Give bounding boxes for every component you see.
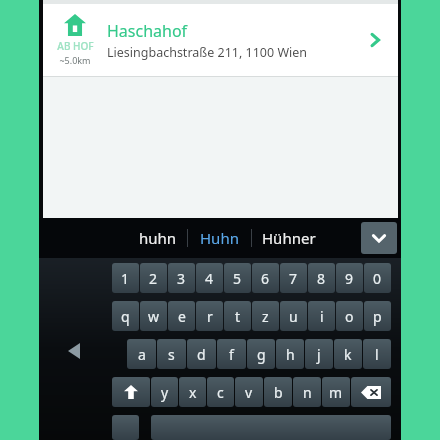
- button[interactable]: Hide keyboard: [61, 336, 91, 366]
- button[interactable]: More suggestions: [361, 222, 397, 254]
- staticText: k: [344, 345, 352, 364]
- staticText: AB HOF: [57, 39, 94, 53]
- button[interactable]: t: [224, 301, 251, 331]
- staticText: 1: [121, 269, 130, 288]
- button[interactable]: w: [140, 301, 167, 331]
- button[interactable]: q: [112, 301, 139, 331]
- staticText: n: [303, 383, 312, 402]
- staticText: h: [286, 345, 295, 364]
- staticText: y: [161, 383, 169, 402]
- button[interactable]: 5: [224, 263, 251, 293]
- button[interactable]: h: [276, 339, 304, 369]
- button[interactable]: e: [168, 301, 195, 331]
- button[interactable]: 4: [196, 263, 223, 293]
- button[interactable]: AB HOF: [43, 4, 398, 76]
- button[interactable]: 8: [308, 263, 335, 293]
- staticText: a: [138, 345, 146, 364]
- staticText: d: [197, 345, 206, 364]
- button[interactable]: p: [364, 301, 391, 331]
- staticText: 6: [261, 269, 270, 288]
- button[interactable]: Shift: [112, 377, 150, 407]
- button[interactable]: o: [336, 301, 363, 331]
- staticText: 3: [177, 269, 186, 288]
- staticText: 9: [345, 269, 354, 288]
- staticText: 0: [373, 269, 382, 288]
- staticText: m: [329, 383, 343, 402]
- staticText: f: [229, 345, 234, 364]
- button[interactable]: r: [196, 301, 223, 331]
- button[interactable]: x: [179, 377, 206, 407]
- button[interactable]: c: [207, 377, 234, 407]
- staticText: 5: [233, 269, 242, 288]
- staticText: Hühner: [262, 228, 316, 248]
- staticText: 8: [317, 269, 326, 288]
- button[interactable]: 9: [336, 263, 363, 293]
- button[interactable]: [151, 415, 391, 440]
- button[interactable]: 7: [280, 263, 307, 293]
- staticText: i: [320, 307, 324, 326]
- button[interactable]: [112, 415, 139, 440]
- button[interactable]: s: [157, 339, 186, 369]
- staticText: 4: [205, 269, 214, 288]
- staticText: ~5.0km: [59, 54, 91, 66]
- button[interactable]: 2: [140, 263, 167, 293]
- button[interactable]: Huhn: [188, 228, 251, 248]
- button[interactable]: f: [217, 339, 246, 369]
- button[interactable]: y: [151, 377, 178, 407]
- staticText: Huhn: [200, 228, 239, 248]
- staticText: z: [262, 307, 269, 326]
- staticText: 2: [149, 269, 158, 288]
- button[interactable]: 0: [364, 263, 391, 293]
- staticText: huhn: [139, 228, 177, 248]
- staticText: v: [245, 383, 253, 402]
- button[interactable]: i: [308, 301, 335, 331]
- staticText: s: [168, 345, 175, 364]
- staticText: e: [178, 307, 186, 326]
- staticText: b: [274, 383, 283, 402]
- staticText: x: [189, 383, 197, 402]
- button[interactable]: 3: [168, 263, 195, 293]
- button[interactable]: z: [252, 301, 279, 331]
- staticText: t: [235, 307, 241, 326]
- button[interactable]: Backspace: [351, 377, 391, 407]
- button[interactable]: n: [293, 377, 321, 407]
- staticText: o: [345, 307, 354, 326]
- button[interactable]: d: [187, 339, 216, 369]
- button[interactable]: m: [322, 377, 350, 407]
- button[interactable]: v: [235, 377, 263, 407]
- button[interactable]: g: [247, 339, 275, 369]
- staticText: j: [317, 345, 321, 364]
- button[interactable]: a: [127, 339, 156, 369]
- button[interactable]: k: [334, 339, 362, 369]
- staticText: w: [148, 307, 160, 326]
- staticText: Haschahof: [107, 20, 188, 42]
- button[interactable]: 1: [112, 263, 139, 293]
- button[interactable]: Open details: [352, 4, 398, 76]
- staticText: l: [375, 345, 379, 364]
- staticText: 7: [289, 269, 298, 288]
- button[interactable]: j: [305, 339, 333, 369]
- staticText: c: [217, 383, 224, 402]
- button[interactable]: b: [264, 377, 292, 407]
- button[interactable]: Hühner: [252, 228, 326, 248]
- staticText: p: [373, 307, 382, 326]
- button[interactable]: u: [280, 301, 307, 331]
- staticText: Liesingbachstraße 211, 1100 Wien: [107, 44, 308, 61]
- staticText: g: [257, 345, 266, 364]
- button[interactable]: l: [363, 339, 391, 369]
- button[interactable]: huhn: [129, 228, 187, 248]
- staticText: r: [207, 307, 213, 326]
- staticText: q: [121, 307, 130, 326]
- button[interactable]: 6: [252, 263, 279, 293]
- staticText: u: [289, 307, 298, 326]
